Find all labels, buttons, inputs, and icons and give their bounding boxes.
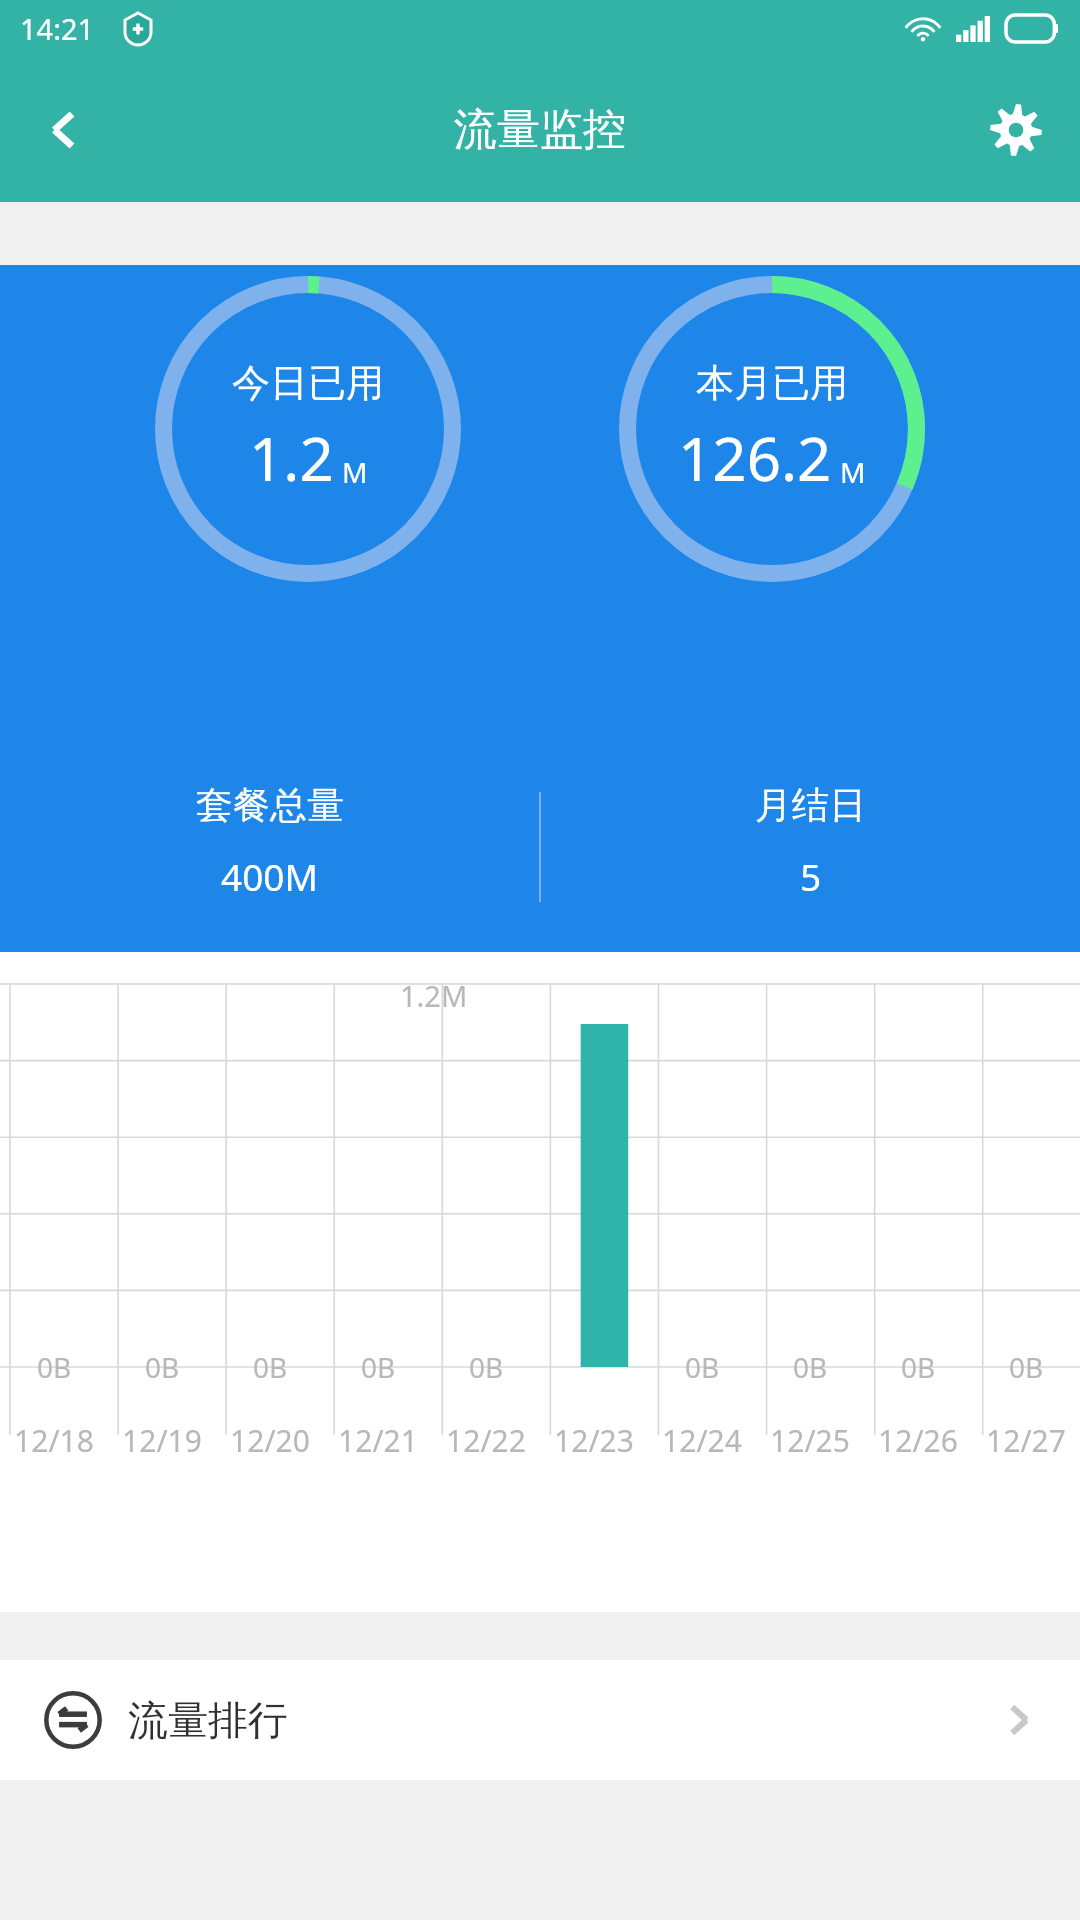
staticText: 12/22 — [446, 1420, 526, 1461]
staticText: 0B — [1009, 1348, 1044, 1386]
staticText: 月结日 — [755, 782, 866, 829]
staticText: 1.2 — [249, 417, 334, 499]
staticText: 5 — [800, 851, 822, 901]
staticText: 12/23 — [554, 1420, 634, 1461]
staticText: 0B — [253, 1348, 288, 1386]
staticText: 流量排行 — [128, 1695, 288, 1745]
staticText: 12/19 — [122, 1420, 202, 1461]
staticText: 流量监控 — [454, 103, 626, 157]
staticText: 套餐总量 — [196, 782, 344, 829]
staticText: M — [840, 453, 866, 491]
staticText: M — [342, 453, 368, 491]
staticText: 0B — [901, 1348, 936, 1386]
staticText: 12/27 — [986, 1420, 1066, 1461]
staticText: 12/25 — [770, 1420, 850, 1461]
staticText: 12/24 — [662, 1420, 742, 1461]
staticText: 12/20 — [230, 1420, 310, 1461]
staticText: 14:21 — [20, 9, 95, 48]
button[interactable]: Back — [22, 88, 106, 172]
staticText: 0B — [37, 1348, 72, 1386]
staticText: 126.2 — [678, 417, 832, 499]
staticText: 本月已用 — [696, 359, 848, 407]
staticText: 12/26 — [878, 1420, 958, 1461]
button[interactable]: Settings — [974, 88, 1058, 172]
staticText: 今日已用 — [232, 359, 384, 407]
staticText: 0B — [145, 1348, 180, 1386]
staticText: 0B — [361, 1348, 396, 1386]
staticText: 0B — [793, 1348, 828, 1386]
staticText: 400M — [221, 851, 319, 901]
staticText: 0B — [685, 1348, 720, 1386]
staticText: 0B — [469, 1348, 504, 1386]
staticText: 1.2M — [400, 976, 468, 1015]
button[interactable]: 流量排行 — [0, 1660, 1080, 1780]
staticText: 12/21 — [338, 1420, 418, 1461]
staticText: 12/18 — [14, 1420, 94, 1461]
